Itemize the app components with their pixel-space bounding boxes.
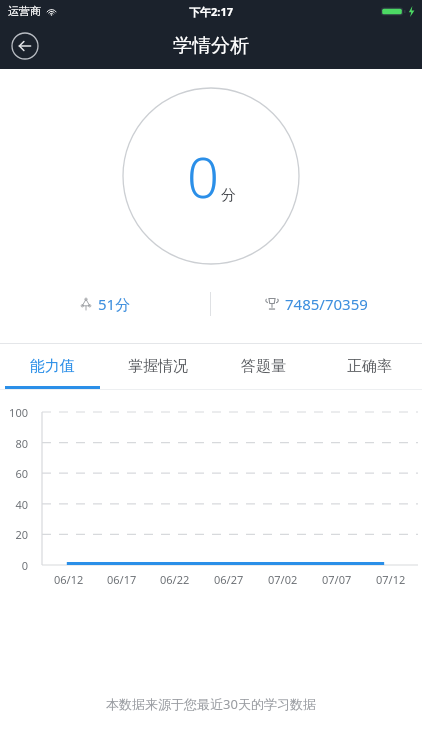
staticText: 能力值 [30, 357, 75, 376]
staticText: 分 [221, 186, 236, 205]
staticText: 7485/70359 [285, 294, 368, 314]
staticText: 07/02 [268, 572, 298, 587]
button[interactable]: 能力值 [0, 344, 105, 389]
staticText: 答题量 [241, 357, 286, 376]
staticText: 0 [187, 138, 219, 214]
staticText: 掌握情况 [128, 357, 188, 376]
staticText: 06/12 [54, 572, 84, 587]
staticText: 06/17 [107, 572, 137, 587]
staticText: 60 [0, 466, 28, 481]
staticText: 运营商 [8, 4, 41, 18]
staticText: 20 [0, 527, 28, 542]
button[interactable]: Back [8, 29, 41, 62]
button[interactable]: 7485/70359 [211, 289, 422, 319]
staticText: 06/22 [160, 572, 190, 587]
staticText: 06/27 [214, 572, 244, 587]
staticText: 40 [0, 497, 28, 512]
staticText: 100 [0, 405, 28, 420]
staticText: 07/12 [376, 572, 406, 587]
button[interactable]: 51分 [0, 289, 210, 319]
staticText: 本数据来源于您最近30天的学习数据 [0, 695, 422, 713]
staticText: 80 [0, 436, 28, 451]
staticText: 学情分析 [173, 34, 249, 58]
button[interactable]: 掌握情况 [105, 344, 210, 389]
staticText: 0 [0, 558, 28, 573]
button[interactable]: 正确率 [316, 344, 422, 389]
staticText: 正确率 [347, 357, 392, 376]
button[interactable]: 答题量 [210, 344, 316, 389]
staticText: 下午2:17 [189, 4, 233, 19]
staticText: 07/07 [322, 572, 352, 587]
staticText: 51分 [98, 294, 131, 314]
